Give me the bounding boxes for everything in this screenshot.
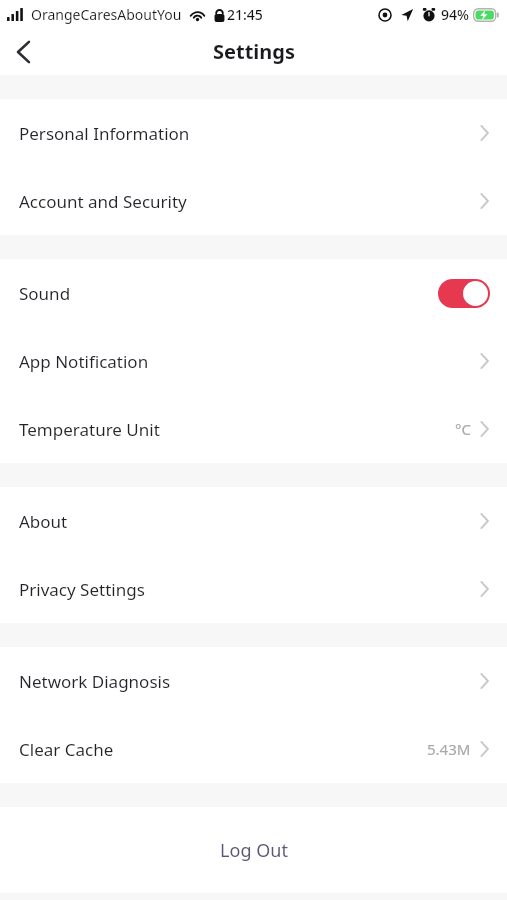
staticText: Privacy Settings <box>19 578 145 601</box>
staticText: OrangeCaresAboutYou <box>31 5 182 24</box>
staticText: °C <box>455 419 471 439</box>
button[interactable]: Personal Information <box>0 99 507 167</box>
staticText: Log Out <box>220 838 288 863</box>
staticText: Account and Security <box>19 190 187 213</box>
staticText: Personal Information <box>19 122 190 145</box>
staticText: Settings <box>213 38 295 65</box>
button[interactable]: Sound toggle, on <box>438 279 490 308</box>
staticText: 94% <box>441 5 469 24</box>
staticText: 21:45 <box>227 5 263 24</box>
button[interactable]: Privacy Settings <box>0 555 507 623</box>
staticText: 5.43M <box>427 739 471 759</box>
button[interactable]: Clear Cache <box>0 715 507 783</box>
button[interactable]: App Notification <box>0 327 507 395</box>
button[interactable]: Log Out <box>0 807 507 893</box>
button[interactable]: About <box>0 487 507 555</box>
staticText: Network Diagnosis <box>19 670 171 693</box>
staticText: Sound <box>19 282 71 305</box>
staticText: Clear Cache <box>19 738 114 761</box>
staticText: About <box>19 510 68 533</box>
button[interactable]: Temperature Unit <box>0 395 507 463</box>
staticText: Temperature Unit <box>19 418 160 441</box>
staticText: App Notification <box>19 350 149 373</box>
button[interactable]: Account and Security <box>0 167 507 235</box>
button[interactable]: Network Diagnosis <box>0 647 507 715</box>
button[interactable]: Back <box>0 29 46 75</box>
